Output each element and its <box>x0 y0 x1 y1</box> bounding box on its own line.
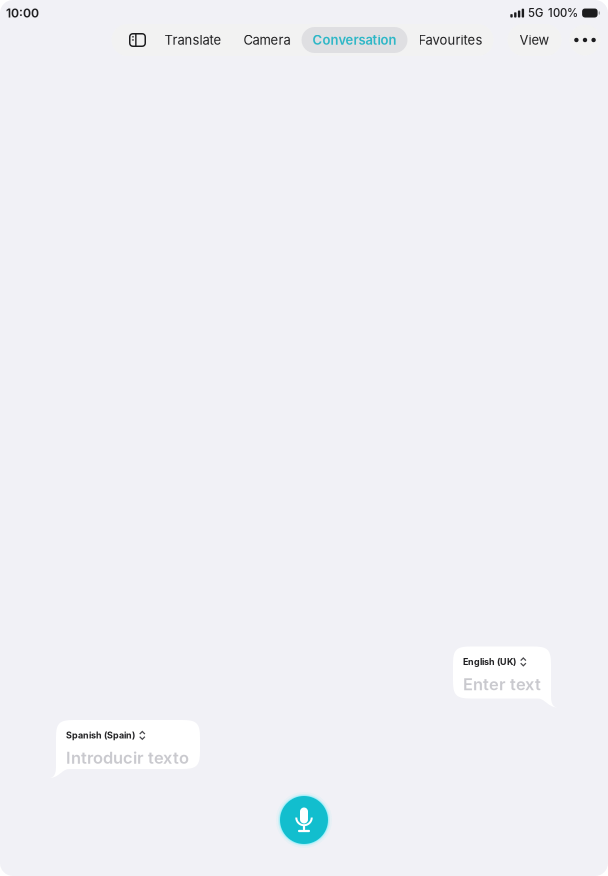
staticText: 10:00 <box>6 6 39 20</box>
staticText: Introducir texto <box>66 748 189 768</box>
button[interactable]: View <box>507 24 561 56</box>
button[interactable]: Show Sidebar <box>121 27 153 53</box>
staticText: English (UK) <box>463 656 516 667</box>
staticText: Camera <box>243 32 290 48</box>
button[interactable]: Start listening <box>272 788 336 852</box>
button[interactable]: Favourites <box>407 27 493 53</box>
staticText: View <box>519 32 549 48</box>
staticText: 5G <box>528 6 543 20</box>
button[interactable]: Translate <box>153 27 232 53</box>
button[interactable]: More <box>569 24 600 55</box>
button[interactable]: Spanish (Spain) <box>56 720 200 778</box>
staticText: Enter text <box>463 674 541 694</box>
staticText: Spanish (Spain) <box>66 730 135 741</box>
staticText: Translate <box>164 32 221 48</box>
button[interactable]: English (UK) <box>453 646 551 707</box>
staticText: Conversation <box>312 32 396 48</box>
button[interactable]: Conversation <box>301 27 407 53</box>
staticText: Favourites <box>418 32 482 48</box>
button[interactable]: Camera <box>232 27 301 53</box>
staticText: 100% <box>548 6 578 20</box>
